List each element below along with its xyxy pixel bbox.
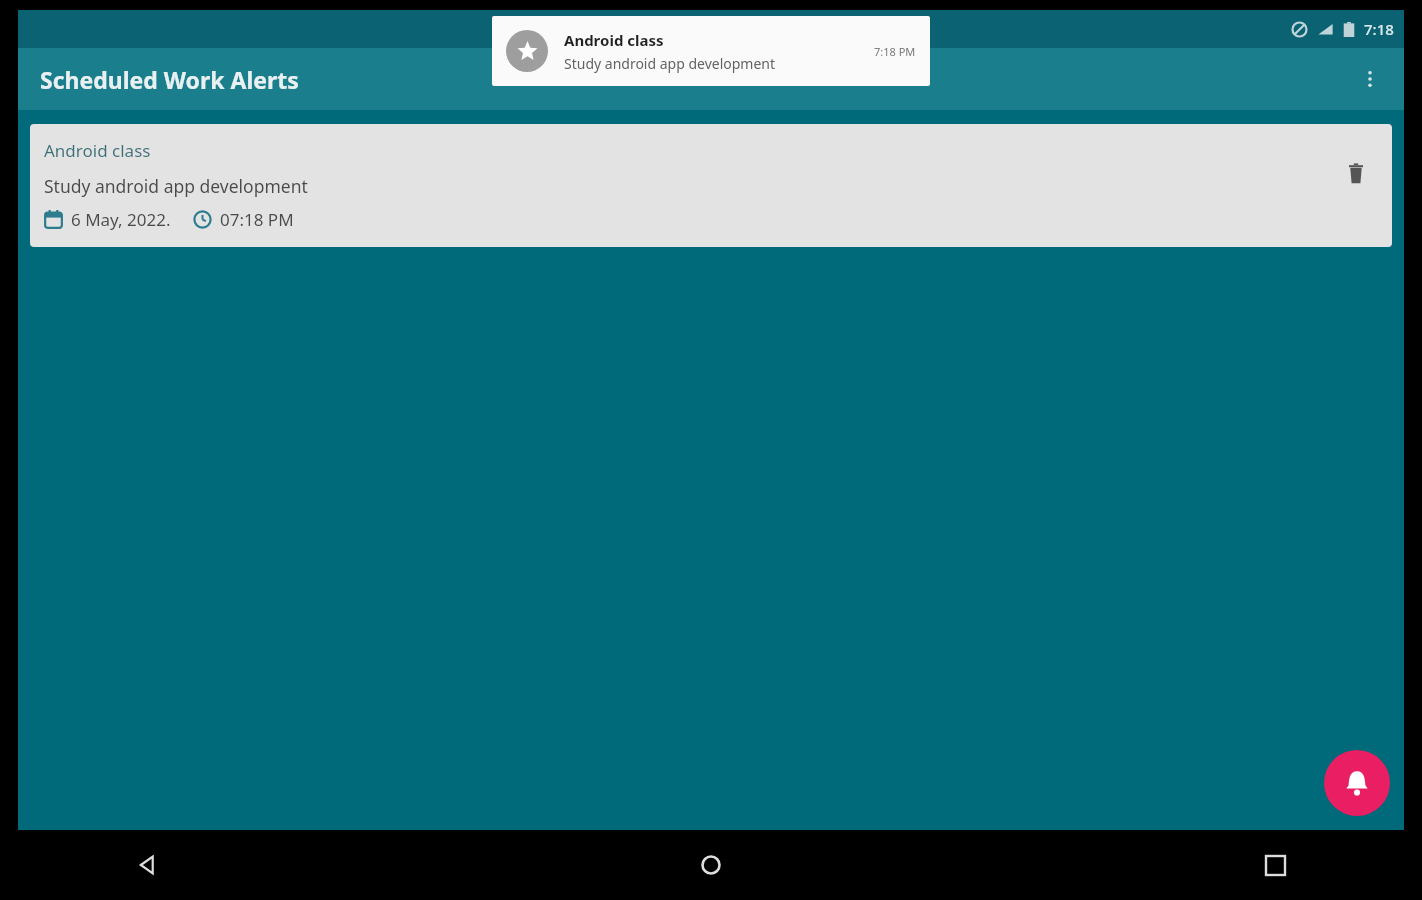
staticText: Study android app development [44,174,308,198]
button[interactable]: Home [684,838,738,892]
button[interactable]: Delete [1338,156,1374,192]
staticText: Scheduled Work Alerts [40,64,299,95]
button[interactable]: Android class [492,16,930,86]
staticText: Android class [44,139,151,162]
button[interactable]: Back [120,838,174,892]
button[interactable]: Android class [30,124,1392,247]
staticText: 7:18 PM [874,44,916,59]
button[interactable]: Recents [1248,838,1302,892]
staticText: Android class [564,30,664,50]
staticText: 07:18 PM [220,208,294,231]
button[interactable]: More options [1348,57,1392,101]
staticText: 6 May, 2022. [71,208,171,231]
staticText: 7:18 [1364,19,1394,39]
staticText: Study android app development [564,54,776,73]
button[interactable]: Add alert [1324,750,1390,816]
